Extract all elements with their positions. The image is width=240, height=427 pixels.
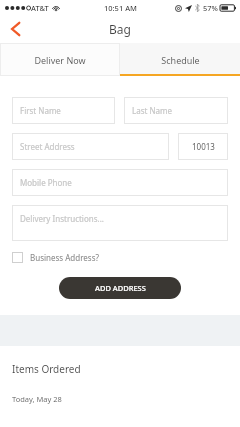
- button[interactable]: Back: [0, 15, 30, 43]
- button[interactable]: Delivery Instructions...: [12, 205, 228, 241]
- staticText: Deliver Now: [34, 54, 86, 66]
- staticText: AT&T: [31, 3, 49, 13]
- staticText: Last Name: [132, 105, 173, 116]
- staticText: ADD ADDRESS: [95, 283, 146, 293]
- staticText: Items Ordered: [12, 362, 81, 376]
- staticText: 10:51 AM: [104, 3, 137, 13]
- button[interactable]: Business Address?: [12, 252, 99, 263]
- button[interactable]: ADD ADDRESS: [59, 277, 181, 299]
- staticText: Today, May 28: [12, 394, 62, 404]
- staticText: Bag: [109, 21, 131, 37]
- button[interactable]: Schedule: [120, 43, 240, 76]
- staticText: 57%: [203, 3, 218, 13]
- staticText: Mobile Phone: [20, 177, 72, 188]
- staticText: Street Address: [20, 141, 75, 152]
- staticText: First Name: [20, 105, 61, 116]
- button[interactable]: Deliver Now: [0, 43, 120, 76]
- button[interactable]: First Name: [12, 97, 115, 124]
- staticText: 10013: [192, 141, 215, 152]
- button[interactable]: 10013: [178, 133, 228, 160]
- staticText: Business Address?: [30, 252, 99, 263]
- staticText: Schedule: [161, 54, 200, 66]
- staticText: Delivery Instructions...: [20, 213, 104, 224]
- button[interactable]: Last Name: [124, 97, 228, 124]
- button[interactable]: Mobile Phone: [12, 169, 228, 196]
- button[interactable]: Street Address: [12, 133, 169, 160]
